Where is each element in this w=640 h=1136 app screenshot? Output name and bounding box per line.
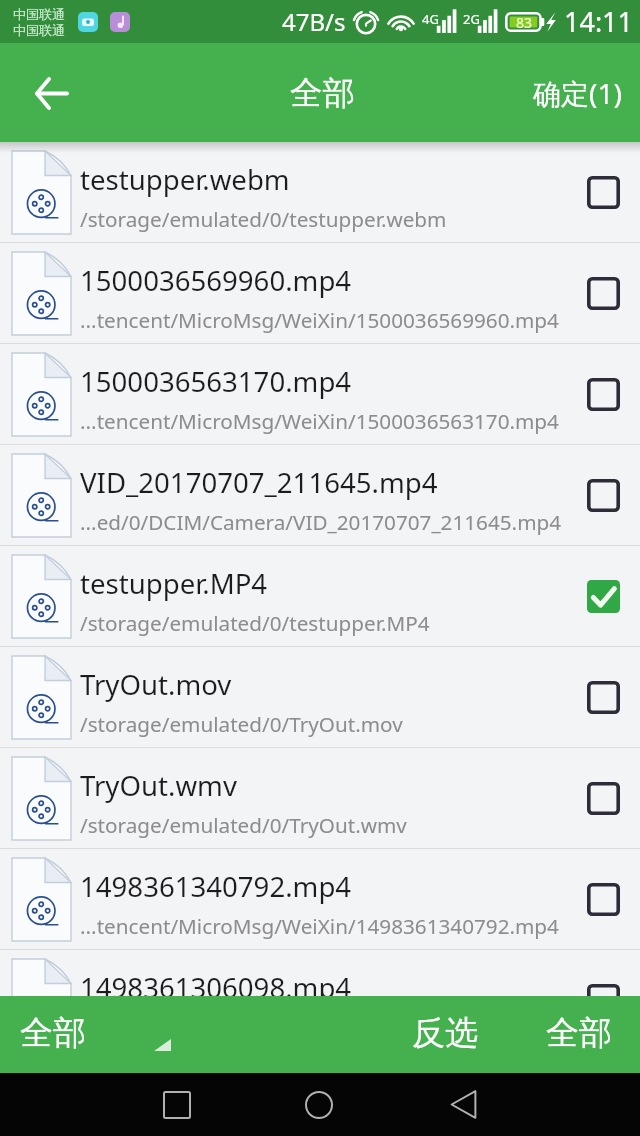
staticText: 83 <box>516 13 533 32</box>
staticText: 1500036569960.mp4 <box>80 261 352 299</box>
staticText: TryOut.mov <box>80 665 232 703</box>
button[interactable]: Select <box>567 964 639 996</box>
staticText: /storage/emulated/0/testupper.MP4 <box>80 609 430 637</box>
staticText: ...tencent/MicroMsg/WeiXin/1500036563170… <box>80 407 559 435</box>
staticText: 1500036563170.mp4 <box>80 362 352 400</box>
staticText: 中国联通 <box>13 22 65 38</box>
button[interactable]: 全部 <box>522 1000 636 1070</box>
button[interactable]: Select <box>567 257 639 329</box>
button[interactable]: Back <box>417 1073 509 1136</box>
staticText: 中国联通 <box>13 6 65 22</box>
staticText: /storage/emulated/0/testupper.webm <box>80 205 447 233</box>
button[interactable]: TryOut.wmv <box>0 748 640 848</box>
button[interactable]: 1500036569960.mp4 <box>0 243 640 343</box>
staticText: 47B/s <box>282 5 346 38</box>
staticText: 14:11 <box>564 3 634 40</box>
button[interactable]: VID_20170707_211645.mp4 <box>0 445 640 545</box>
staticText: ...ed/0/DCIM/Camera/VID_20170707_211645.… <box>80 508 562 536</box>
button[interactable]: Select <box>567 156 639 228</box>
staticText: ...tencent/MicroMsg/WeiXin/1498361340792… <box>80 912 559 940</box>
staticText: 1498361340792.mp4 <box>80 867 352 905</box>
button[interactable]: Select <box>567 863 639 935</box>
staticText: 全部 <box>20 1012 86 1054</box>
button[interactable]: 1500036563170.mp4 <box>0 344 640 444</box>
button[interactable]: 全部 <box>0 1000 195 1070</box>
button[interactable]: Select <box>567 661 639 733</box>
staticText: 1498361306098.mp4 <box>80 968 352 996</box>
button[interactable]: 1498361340792.mp4 <box>0 849 640 949</box>
button[interactable]: 1498361306098.mp4 <box>0 950 640 996</box>
button[interactable]: Select <box>567 358 639 430</box>
staticText: ...tencent/MicroMsg/WeiXin/1500036569960… <box>80 306 559 334</box>
staticText: 反选 <box>412 1012 478 1054</box>
button[interactable]: Recents <box>131 1073 223 1136</box>
button[interactable]: testupper.webm <box>0 142 640 242</box>
staticText: 全部 <box>290 73 355 114</box>
button[interactable]: 反选 <box>388 1000 502 1070</box>
staticText: testupper.webm <box>80 160 290 198</box>
button[interactable]: testupper.MP4 <box>0 546 640 646</box>
staticText: 4G <box>422 10 439 28</box>
button[interactable]: Select <box>567 560 639 632</box>
button[interactable]: 确定(1) <box>505 58 640 128</box>
staticText: /storage/emulated/0/TryOut.mov <box>80 710 403 738</box>
button[interactable]: Home <box>273 1073 365 1136</box>
staticText: testupper.MP4 <box>80 564 268 602</box>
staticText: 全部 <box>546 1012 612 1054</box>
staticText: VID_20170707_211645.mp4 <box>80 463 438 501</box>
staticText: /storage/emulated/0/TryOut.wmv <box>80 811 407 839</box>
staticText: TryOut.wmv <box>80 766 237 804</box>
button[interactable]: Back <box>12 54 90 132</box>
button[interactable]: Select <box>567 762 639 834</box>
button[interactable]: TryOut.mov <box>0 647 640 747</box>
staticText: 确定(1) <box>533 74 622 112</box>
button[interactable]: Select <box>567 459 639 531</box>
staticText: 2G <box>463 10 480 28</box>
